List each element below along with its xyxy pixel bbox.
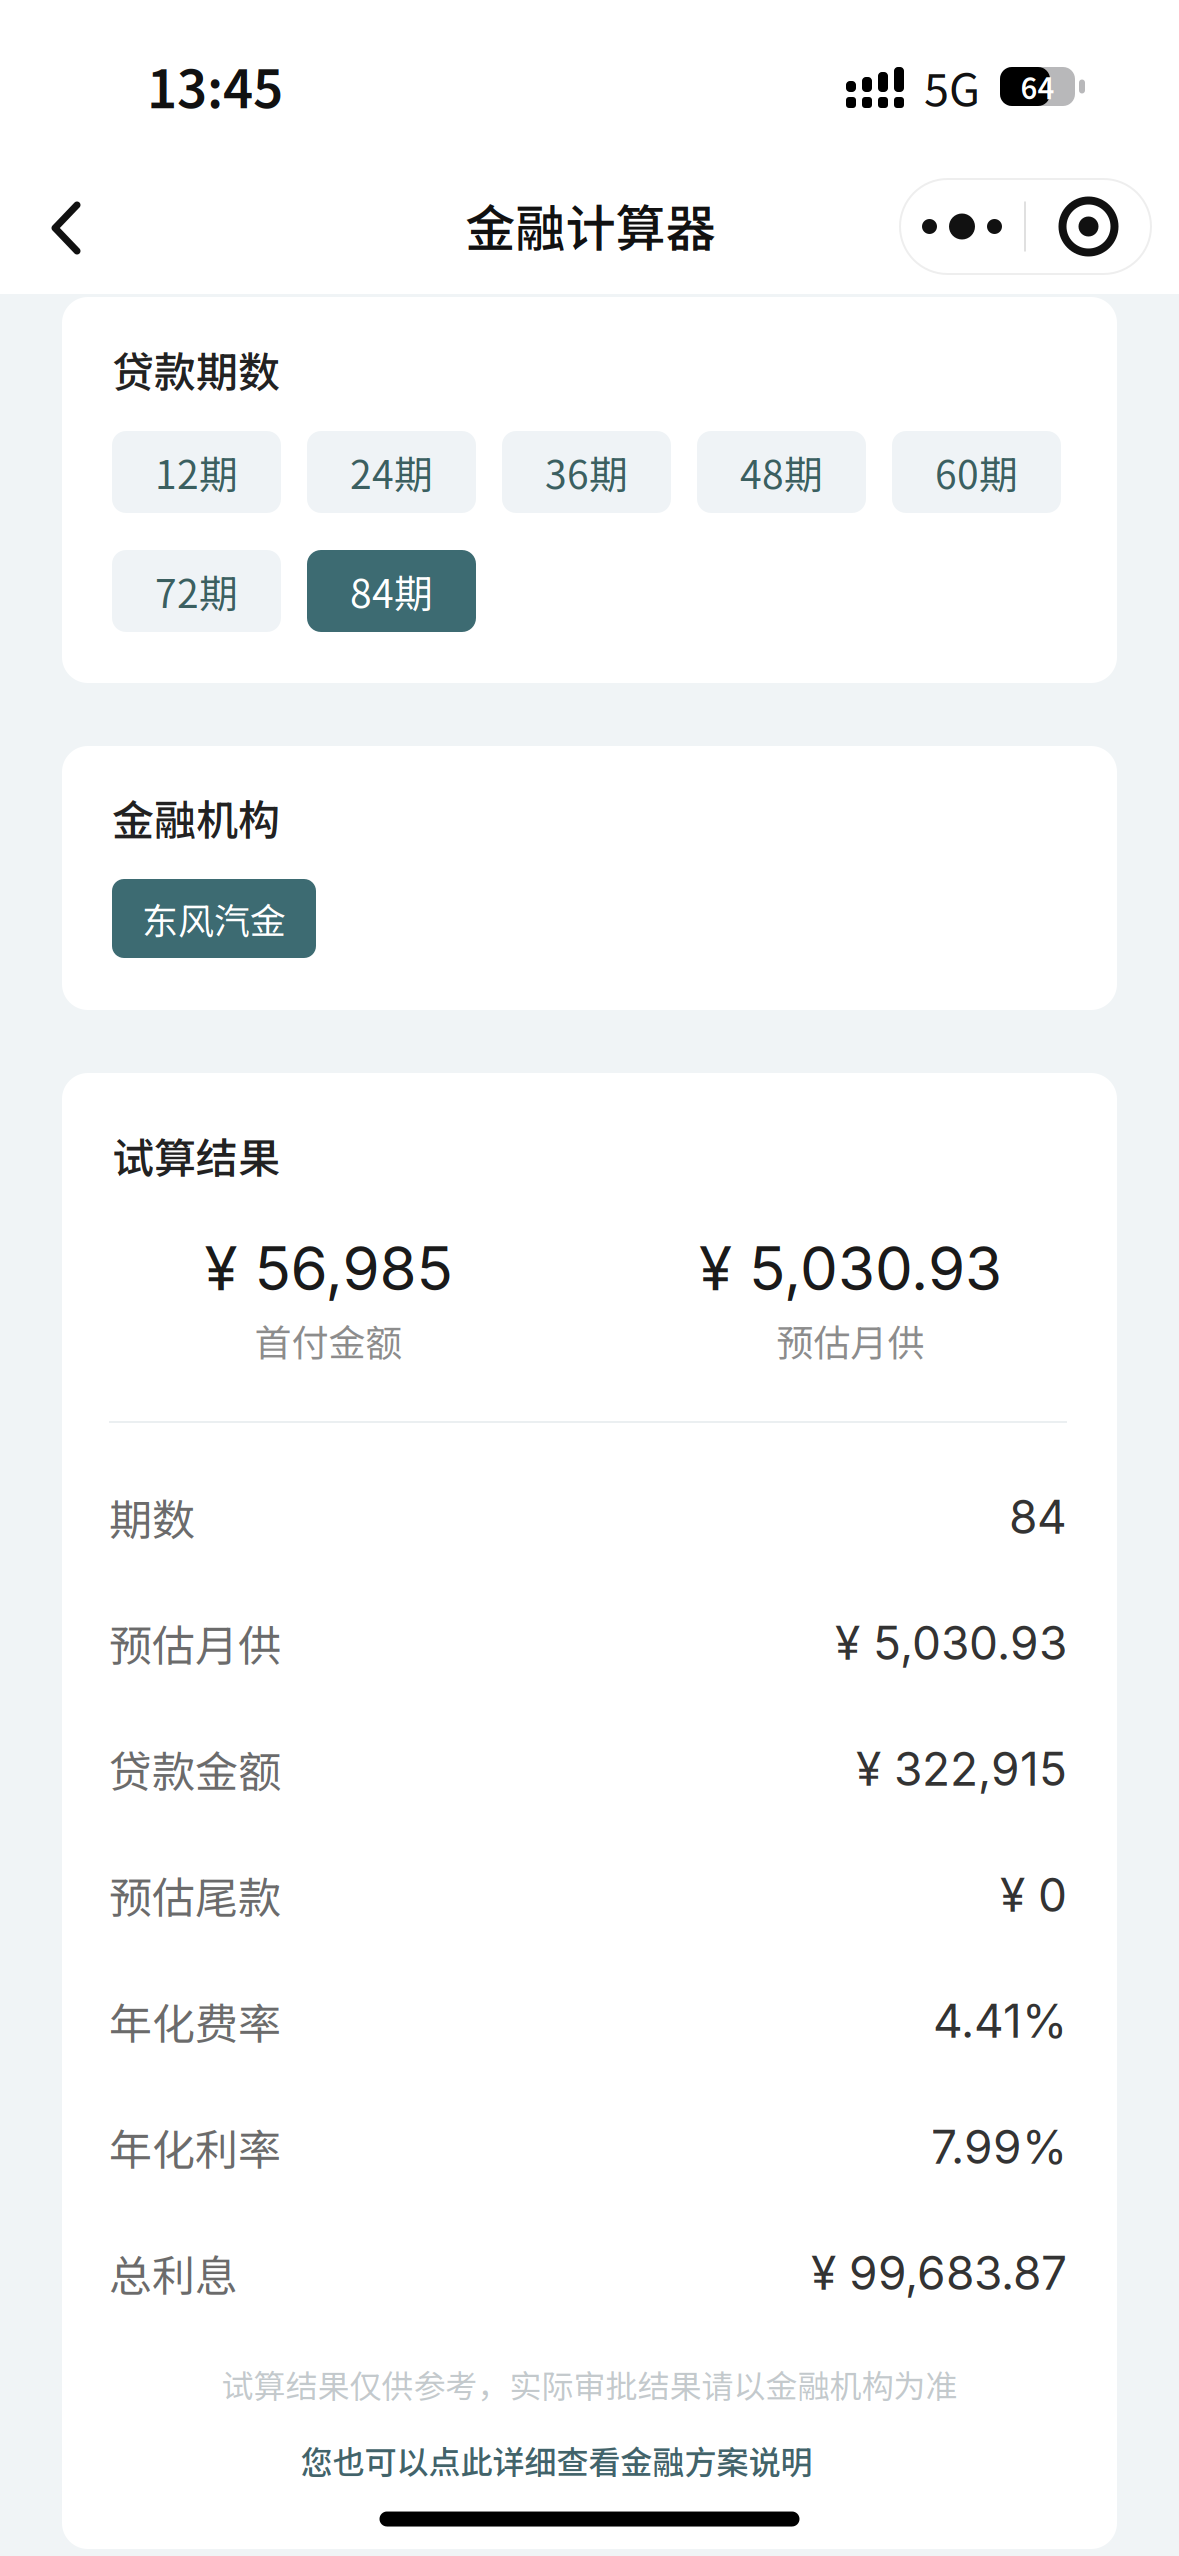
staticText: ¥ 5,030.93 xyxy=(835,1615,1067,1671)
button[interactable]: 60期 xyxy=(892,431,1061,513)
staticText: 预估月供 xyxy=(109,1612,281,1674)
staticText: 金融计算器 xyxy=(465,189,715,261)
button[interactable]: 72期 xyxy=(112,550,281,632)
staticText: ¥ 322,915 xyxy=(856,1741,1067,1797)
button[interactable]: 12期 xyxy=(112,431,281,513)
staticText: 首付金额 xyxy=(254,1314,402,1367)
staticText: 72期 xyxy=(155,563,238,619)
button[interactable]: 36期 xyxy=(502,431,671,513)
staticText: 13:45 xyxy=(147,48,283,123)
staticText: 年化费率 xyxy=(109,1990,281,2052)
staticText: 东风汽金 xyxy=(142,892,286,944)
button[interactable]: 84期 xyxy=(307,550,476,632)
staticText: 48期 xyxy=(740,444,823,500)
staticText: 年化利率 xyxy=(109,2116,281,2178)
staticText: 5G xyxy=(924,54,980,119)
button[interactable]: 返回 xyxy=(20,163,116,293)
staticText: 您也可以点此详细查看金融方案说明 xyxy=(300,2437,812,2483)
staticText: ¥ 5,030.93 xyxy=(699,1232,1002,1305)
staticText: 预估尾款 xyxy=(109,1864,281,1926)
button[interactable]: 您也可以点此详细查看金融方案说明 xyxy=(79,2432,1034,2488)
staticText: ¥ 99,683.87 xyxy=(811,2245,1067,2301)
staticText: ¥ 56,985 xyxy=(204,1232,452,1305)
staticText: 24期 xyxy=(350,444,433,500)
staticText: 84 xyxy=(1009,1489,1067,1545)
staticText: 金融机构 xyxy=(112,787,280,848)
staticText: 4.41% xyxy=(933,1993,1067,2049)
staticText: ¥ 0 xyxy=(1000,1867,1067,1923)
button[interactable]: 更多 xyxy=(900,179,1024,274)
staticText: 贷款期数 xyxy=(112,339,280,400)
button[interactable]: 24期 xyxy=(307,431,476,513)
staticText: 试算结果 xyxy=(112,1125,280,1186)
staticText: 36期 xyxy=(545,444,628,500)
staticText: 84期 xyxy=(350,563,433,619)
staticText: 12期 xyxy=(155,444,238,500)
staticText: 7.99% xyxy=(931,2119,1067,2175)
staticText: 60期 xyxy=(935,444,1018,500)
button[interactable]: 东风汽金 xyxy=(112,879,316,958)
staticText: 贷款金额 xyxy=(109,1738,281,1800)
staticText: 期数 xyxy=(109,1486,195,1548)
staticText: 64 xyxy=(1020,65,1054,107)
button[interactable]: 关闭 xyxy=(1026,179,1151,274)
button[interactable]: 48期 xyxy=(697,431,866,513)
staticText: 试算结果仅供参考，实际审批结果请以金融机构为准 xyxy=(221,2361,957,2407)
staticText: 预估月供 xyxy=(776,1314,924,1367)
staticText: 总利息 xyxy=(109,2242,238,2304)
